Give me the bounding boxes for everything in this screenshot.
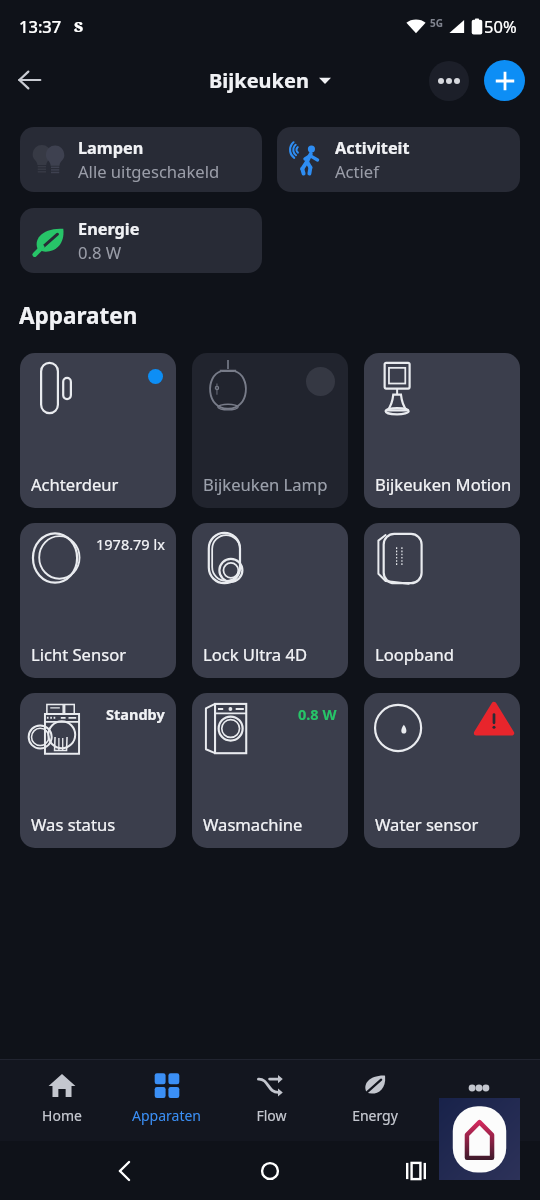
button[interactable]: Bijkeuken — [203, 63, 337, 98]
staticText: Loopband — [375, 643, 454, 666]
staticText: Licht Sensor — [31, 643, 127, 666]
staticText: Standby — [106, 704, 165, 724]
button[interactable]: Energie — [20, 208, 262, 273]
button[interactable]: Bijkeuken Lamp — [192, 353, 348, 508]
staticText: Energy — [352, 1106, 398, 1125]
button[interactable]: Activiteit — [277, 127, 520, 192]
staticText: Flow — [256, 1106, 287, 1125]
staticText: 0.8 W — [298, 704, 337, 724]
staticText: Apparaten — [132, 1106, 201, 1125]
staticText: Apparaten — [19, 300, 138, 331]
button[interactable]: Back — [102, 1149, 146, 1193]
button[interactable]: Back — [9, 60, 49, 100]
staticText: S — [74, 16, 84, 36]
button[interactable]: Loopband — [364, 523, 520, 678]
staticText: Actief — [335, 160, 379, 183]
button[interactable]: Lampen — [20, 127, 262, 192]
button[interactable]: Standby — [20, 693, 176, 848]
button[interactable]: More options — [429, 61, 469, 101]
button[interactable]: Energy — [323, 1060, 427, 1141]
staticText: Achterdeur — [31, 473, 119, 496]
staticText: 50% — [484, 15, 517, 37]
staticText: Home — [42, 1106, 82, 1125]
button[interactable]: Add device — [484, 60, 525, 101]
button[interactable]: Home — [9, 1060, 114, 1141]
staticText: Lampen — [78, 137, 144, 159]
staticText: 13:37 — [19, 15, 62, 37]
button[interactable]: Bijkeuken Motion — [364, 353, 520, 508]
staticText: Bijkeuken Motion — [375, 473, 512, 496]
button[interactable]: Home — [248, 1149, 292, 1193]
staticText: Bijkeuken — [209, 67, 309, 94]
staticText: 1978.79 lx — [96, 534, 165, 554]
button[interactable]: Flow — [219, 1060, 323, 1141]
button[interactable]: Apparaten — [114, 1060, 219, 1141]
staticText: Alle uitgeschakeld — [78, 160, 220, 183]
staticText: Water sensor — [375, 813, 479, 836]
staticText: 0.8 W — [78, 241, 122, 264]
staticText: Bijkeuken Lamp — [203, 473, 328, 496]
button[interactable]: Recent apps — [394, 1149, 438, 1193]
button[interactable]: Lock Ultra 4D — [192, 523, 348, 678]
button[interactable]: Water sensor — [364, 693, 520, 848]
staticText: Energie — [78, 218, 140, 240]
staticText: Wasmachine — [203, 813, 303, 836]
staticText: Activiteit — [335, 137, 410, 159]
button[interactable]: 0.8 W — [192, 693, 348, 848]
staticText: Was status — [31, 813, 116, 836]
staticText: Lock Ultra 4D — [203, 643, 308, 666]
button[interactable]: Achterdeur — [20, 353, 176, 508]
button[interactable]: More — [427, 1060, 531, 1141]
button[interactable]: 1978.79 lx — [20, 523, 176, 678]
staticText: 5G — [430, 16, 443, 30]
